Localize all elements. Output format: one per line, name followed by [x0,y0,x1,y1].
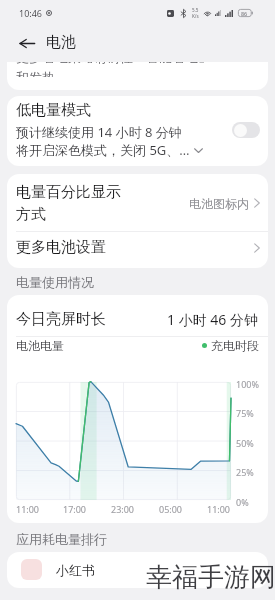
staticText: 电量使用情况 [16,274,94,290]
staticText: 预计继续使用 14 小时 8 分钟 [16,123,182,141]
staticText: 应用耗电量排行 [16,531,107,547]
staticText: 幸福手游网 [146,561,275,594]
staticText: K/s [192,13,199,19]
button[interactable]: 返回 [15,32,39,54]
staticText: 更多电池设置 [16,238,254,257]
button[interactable]: 低电量模式 [7,96,268,166]
staticText: 23:00 [111,503,135,515]
button[interactable]: 更多电池设置 [7,232,268,268]
staticText: 电量百分比显示 方式 [16,183,189,223]
staticText: 1 小时 46 分钟 [167,310,258,329]
staticText: 今日亮屏时长 [16,310,167,329]
staticText: 将开启深色模式，关闭 5G、… [16,141,190,159]
staticText: 0% [236,496,249,508]
staticText: 11:00 [16,503,40,515]
staticText: 更多省电策略请前往「智能省电」 [16,62,211,65]
staticText: 电池电量 [16,338,64,353]
staticText: 100% [236,378,259,390]
button[interactable]: 小红书 [7,552,268,588]
staticText: 电池图标内 [189,196,249,211]
staticText: 低电量模式 [16,101,91,120]
staticText: 75% [236,407,254,419]
button[interactable]: 今日亮屏时长 [7,295,268,336]
staticText: 25% [236,466,254,478]
staticText: 17:00 [63,503,87,515]
staticText: 10:46 [19,7,43,19]
staticText: 50% [236,437,254,449]
staticText: 05:00 [159,503,183,515]
button[interactable]: 电量百分比显示 方式 [7,174,268,231]
staticText: 充电时段 [211,338,259,353]
staticText: 小红书 [56,562,95,578]
staticText: 86 [241,10,248,17]
staticText: 11:00 [207,503,231,515]
staticText: 5.5 [192,7,199,13]
staticText: 电池 [46,33,76,52]
staticText: 和发热 [16,69,55,77]
button[interactable]: 低电量模式开关 [232,122,260,138]
